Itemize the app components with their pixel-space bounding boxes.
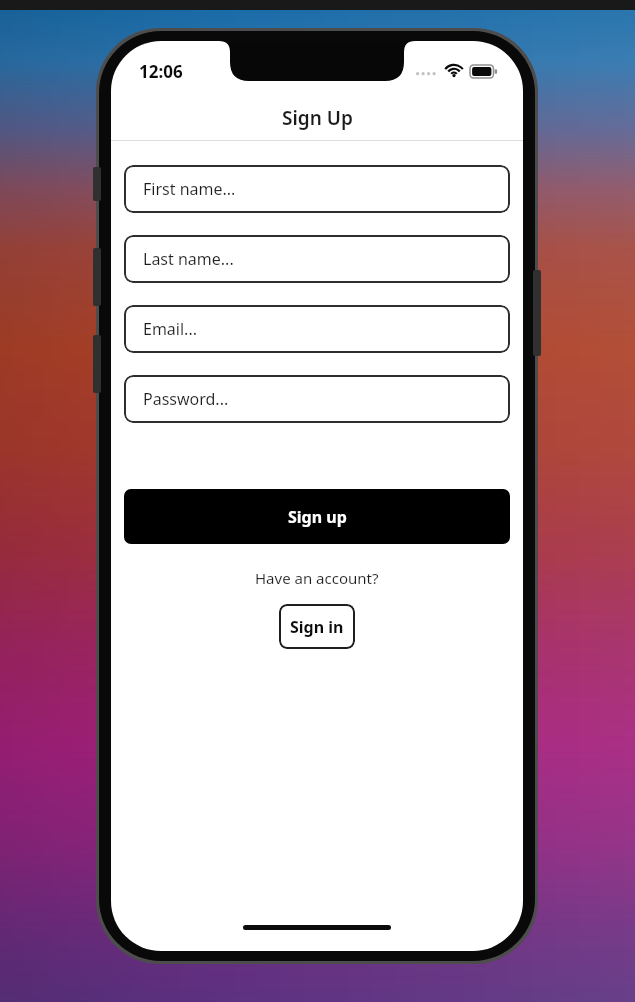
staticText: Sign up <box>288 506 347 528</box>
staticText: Sign in <box>290 616 344 638</box>
button[interactable]: First name... <box>124 165 510 213</box>
button[interactable]: Last name... <box>124 235 510 283</box>
button[interactable]: Email... <box>124 305 510 353</box>
staticText: 12:06 <box>139 60 183 83</box>
staticText: Email... <box>143 318 197 340</box>
button[interactable]: Sign up <box>124 489 510 544</box>
staticText: Last name... <box>143 248 234 270</box>
staticText: First name... <box>143 178 236 200</box>
button[interactable]: Password... <box>124 375 510 423</box>
staticText: Sign Up <box>282 105 353 131</box>
staticText: Password... <box>143 388 229 410</box>
button[interactable]: Sign in <box>279 604 355 649</box>
staticText: Have an account? <box>255 568 379 588</box>
